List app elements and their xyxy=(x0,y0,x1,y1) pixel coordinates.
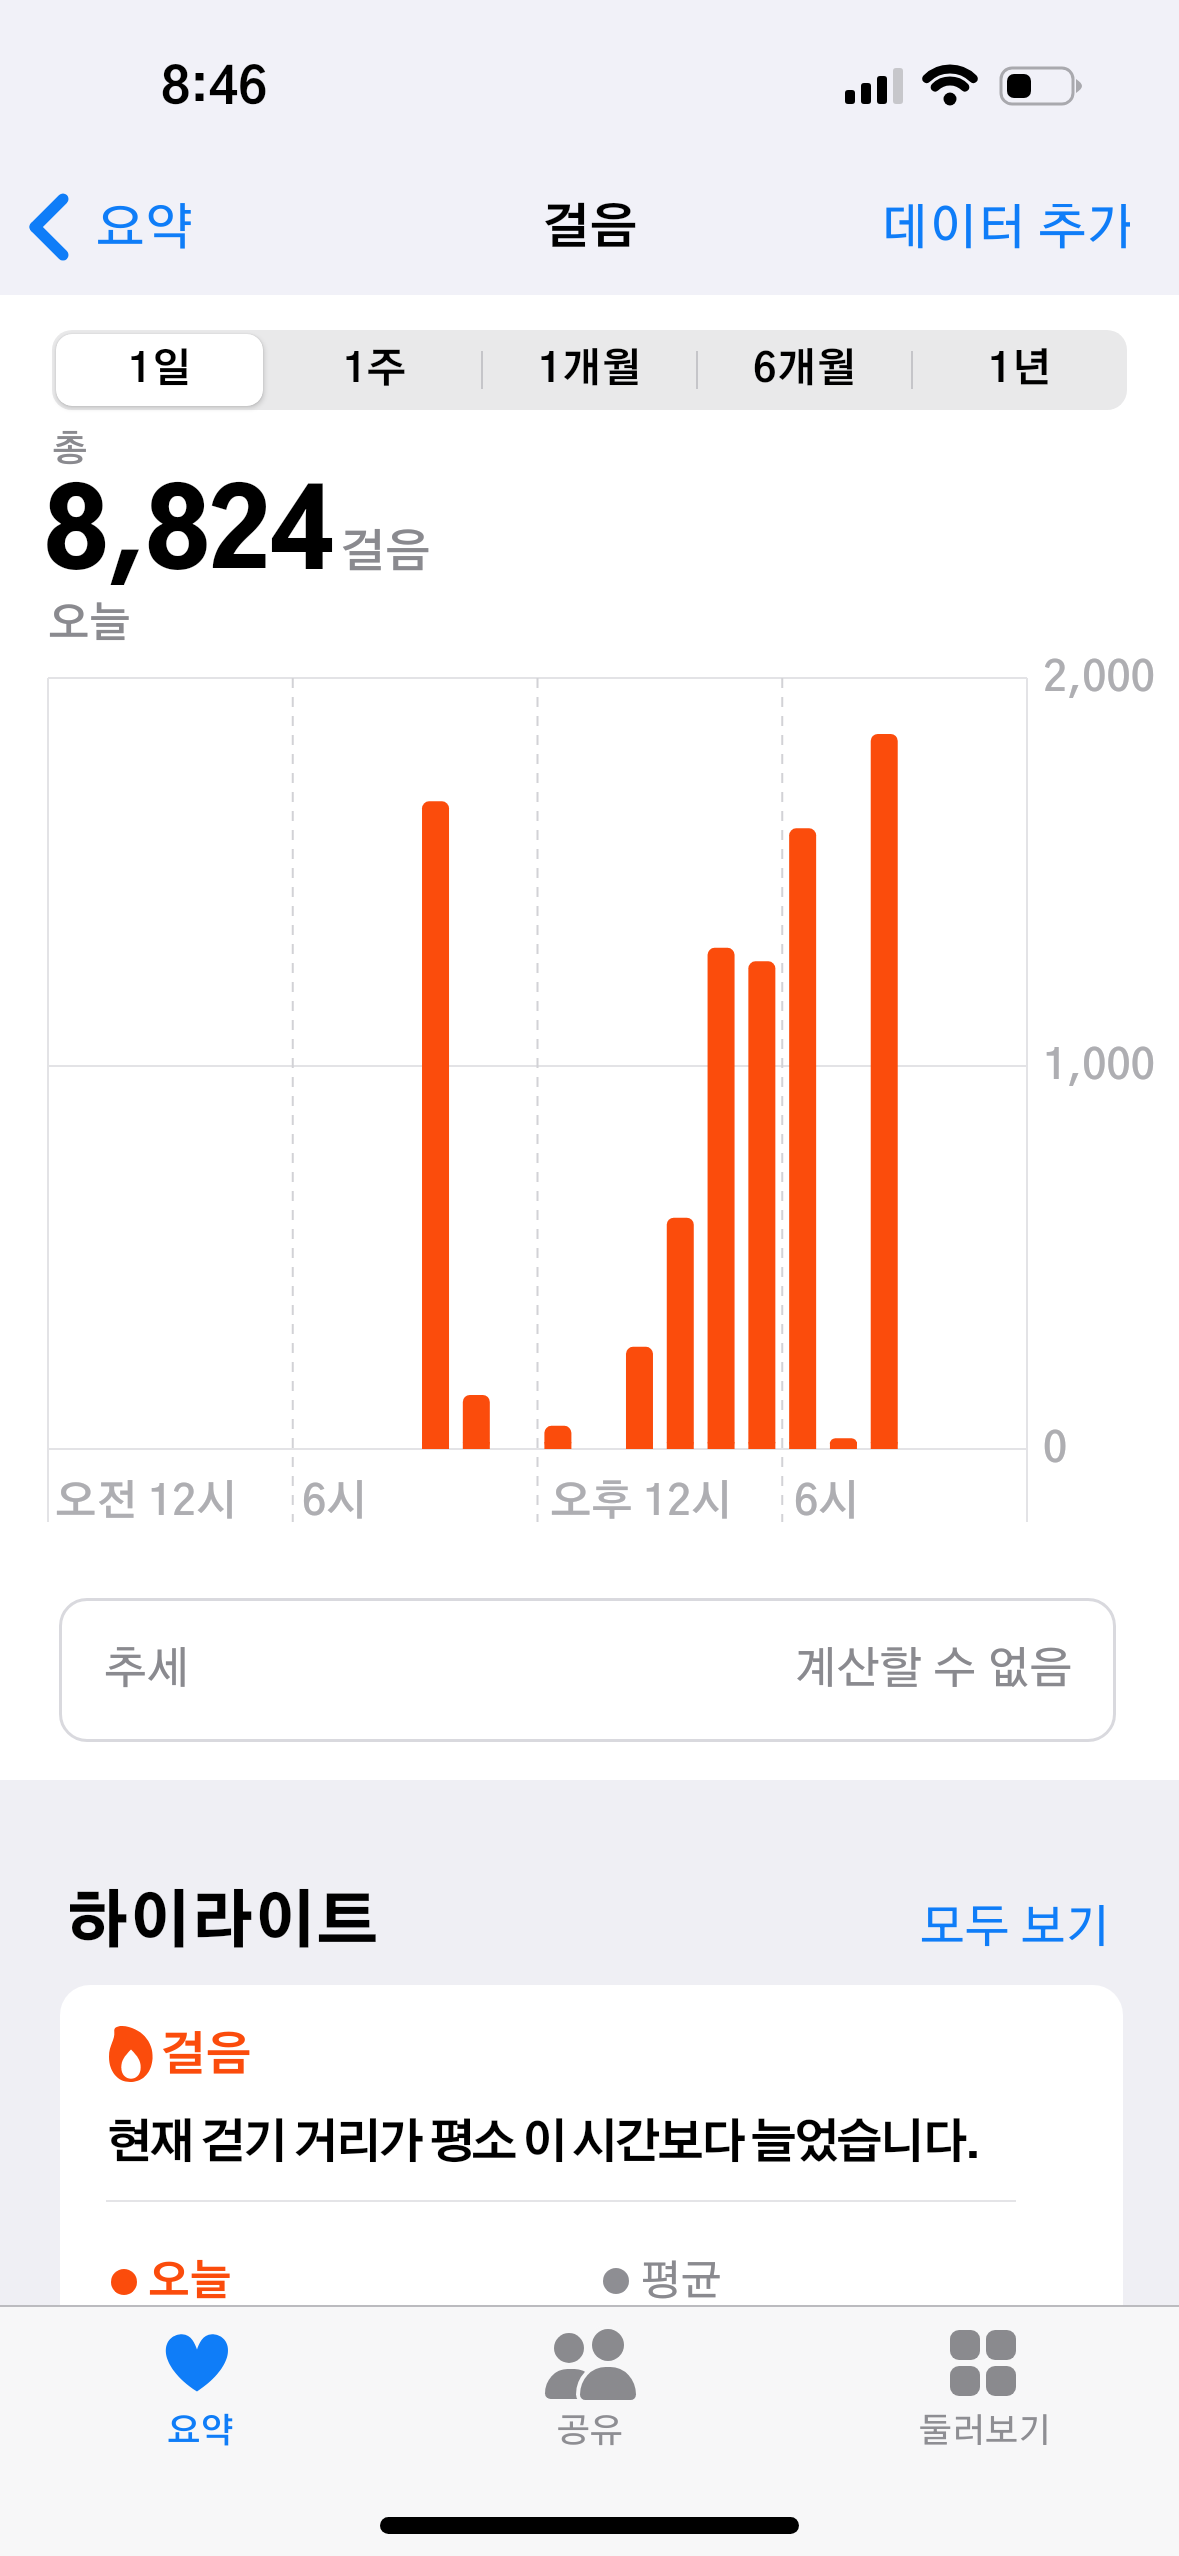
staticText: 2,000 xyxy=(1043,657,1155,699)
staticText: 0 xyxy=(1043,1428,1068,1470)
staticText: 요약 xyxy=(167,2415,234,2449)
staticText: 1,000 xyxy=(1043,1045,1155,1087)
staticText: 6시 xyxy=(794,1481,860,1523)
staticText: 걸음 xyxy=(542,205,638,253)
staticText: 모두 보기 xyxy=(920,1905,1110,1951)
button[interactable]: 데이터 추가 xyxy=(880,198,1130,260)
staticText: 오후 12시 xyxy=(550,1481,733,1523)
button[interactable]: 요약 xyxy=(110,2315,290,2475)
button[interactable]: 추세 xyxy=(59,1598,1116,1742)
staticText: 1년 xyxy=(988,350,1052,390)
button[interactable]: 공유 xyxy=(500,2315,680,2475)
button[interactable]: 1주 xyxy=(267,334,482,406)
staticText: 오전 12시 xyxy=(55,1481,238,1523)
staticText: 1주 xyxy=(343,350,407,390)
button[interactable] xyxy=(56,334,263,406)
staticText: 1개월 xyxy=(538,350,642,390)
button[interactable]: 모두 보기 xyxy=(920,1898,1110,1958)
staticText: 6시 xyxy=(302,1481,368,1523)
staticText: 6개월 xyxy=(753,350,857,390)
staticText: 현재 걷기 거리가 평소 이 시간보다 늘었습니다. xyxy=(106,2121,978,2168)
staticText: 8:46 xyxy=(161,64,268,114)
staticText: 오늘 xyxy=(148,2261,232,2303)
button[interactable] xyxy=(60,1985,1123,2556)
staticText: 공유 xyxy=(557,2415,624,2449)
staticText: 평균 xyxy=(640,2261,722,2303)
staticText: 8,824 xyxy=(44,483,332,589)
staticText: 총 xyxy=(52,432,88,468)
button[interactable]: 1년 xyxy=(912,334,1127,406)
staticText: 1일 xyxy=(128,350,192,390)
staticText: 걸음 xyxy=(160,2033,252,2079)
button[interactable]: 둘러보기 xyxy=(895,2315,1075,2475)
staticText: 걸음 xyxy=(340,530,431,576)
staticText: 요약 xyxy=(96,204,194,254)
staticText: 추세 xyxy=(104,1648,190,1692)
staticText: 데이터 추가 xyxy=(880,204,1130,254)
staticText: 계산할 수 없음 xyxy=(794,1648,1073,1692)
staticText: 둘러보기 xyxy=(919,2415,1052,2449)
button[interactable]: 6개월 xyxy=(697,334,912,406)
staticText: 하이라이트 xyxy=(66,1893,379,1955)
button[interactable] xyxy=(20,180,240,275)
staticText: 오늘 xyxy=(48,603,131,645)
button[interactable]: 1개월 xyxy=(482,334,697,406)
